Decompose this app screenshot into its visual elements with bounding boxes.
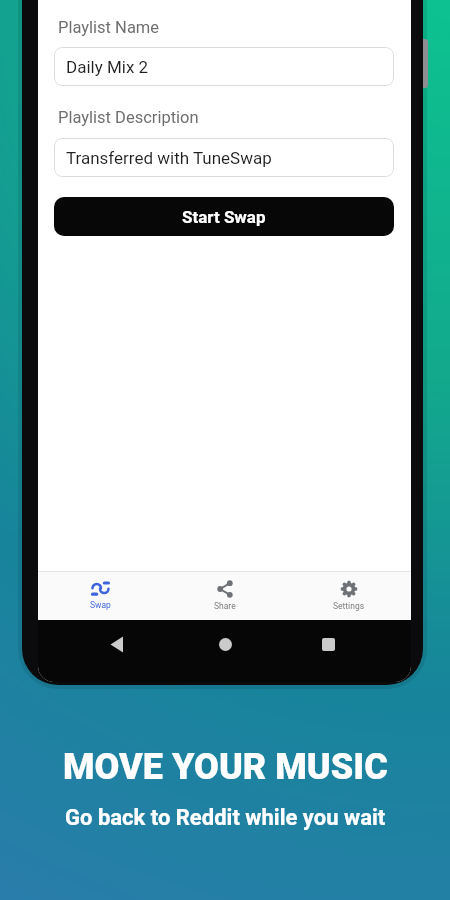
staticText: Swap: [90, 600, 111, 610]
staticText: Playlist Name: [58, 18, 160, 37]
staticText: Playlist Description: [58, 108, 199, 127]
button[interactable]: Start Swap: [54, 197, 394, 236]
button[interactable]: Share: [163, 571, 287, 620]
staticText: Start Swap: [182, 207, 266, 227]
button[interactable]: [310, 626, 346, 662]
button[interactable]: [99, 626, 135, 662]
button[interactable]: [207, 626, 243, 662]
staticText: Daily Mix 2: [66, 57, 149, 77]
button[interactable]: Transferred with TuneSwap: [54, 138, 394, 177]
button[interactable]: Daily Mix 2: [54, 47, 394, 86]
staticText: MOVE YOUR MUSIC: [63, 746, 388, 788]
staticText: Settings: [333, 601, 365, 611]
staticText: Share: [214, 601, 236, 611]
staticText: Go back to Reddit while you wait: [65, 805, 386, 831]
staticText: Transferred with TuneSwap: [66, 148, 272, 168]
button[interactable]: Swap: [38, 571, 163, 620]
button[interactable]: Settings: [287, 571, 411, 620]
